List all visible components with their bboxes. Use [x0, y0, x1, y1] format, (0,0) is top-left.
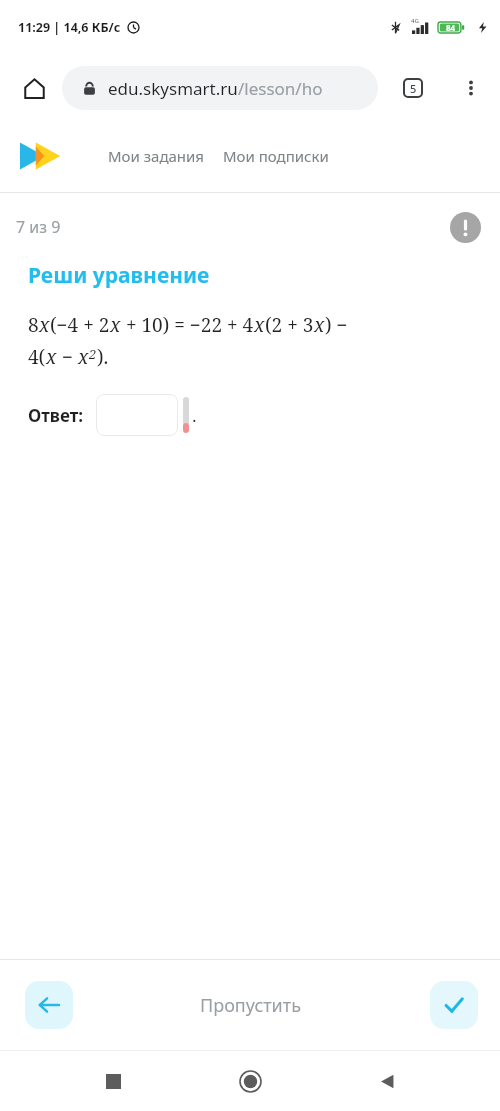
button[interactable]: Recent apps	[89, 1057, 137, 1105]
staticText: 4(	[28, 344, 46, 370]
button[interactable]: Home	[14, 68, 54, 108]
staticText: 84	[446, 22, 456, 33]
staticText: x	[46, 344, 57, 370]
staticText: edu.skysmart.ru	[108, 77, 238, 100]
button[interactable]: edu.skysmart.ru	[62, 66, 378, 110]
staticText: −	[57, 344, 78, 370]
button[interactable]	[96, 394, 178, 436]
staticText: .	[192, 404, 197, 427]
staticText: /lesson/ho	[238, 77, 323, 100]
staticText: x	[254, 312, 265, 338]
staticText: x	[314, 312, 325, 338]
button[interactable]: Back	[25, 981, 73, 1029]
button[interactable]: Info	[444, 206, 486, 248]
staticText: 5	[410, 81, 417, 96]
button[interactable]: More options	[450, 67, 492, 109]
staticText: ) −	[325, 312, 348, 338]
button[interactable]: Check answer	[430, 981, 478, 1029]
staticText: Ответ:	[28, 404, 84, 427]
staticText: 7 из 9	[16, 216, 61, 238]
button[interactable]: Back	[363, 1057, 411, 1105]
button[interactable]: Skysmart	[16, 136, 72, 176]
staticText: Пропустить	[200, 993, 301, 1018]
staticText: x	[39, 312, 50, 338]
staticText: x	[110, 312, 121, 338]
staticText: ).	[97, 344, 109, 370]
staticText: 4G	[411, 17, 419, 25]
staticText: (−4 + 2	[50, 312, 110, 338]
button[interactable]: Мои подписки	[223, 146, 329, 166]
button[interactable]: Пропустить	[186, 985, 315, 1026]
button[interactable]: Мои задания	[108, 146, 205, 166]
button[interactable]: Home	[226, 1057, 274, 1105]
staticText: 11:29 | 14,6 КБ/с	[18, 19, 121, 36]
staticText: (2 + 3	[265, 312, 314, 338]
staticText: 8	[28, 312, 39, 338]
staticText: 2	[89, 345, 97, 363]
staticText: x	[78, 344, 89, 370]
button[interactable]: Tabs	[392, 67, 434, 109]
staticText: Мои подписки	[223, 146, 329, 166]
staticText: + 10) = −22 + 4	[121, 312, 254, 338]
staticText: Реши уравнение	[28, 261, 210, 290]
staticText: Мои задания	[108, 146, 205, 166]
